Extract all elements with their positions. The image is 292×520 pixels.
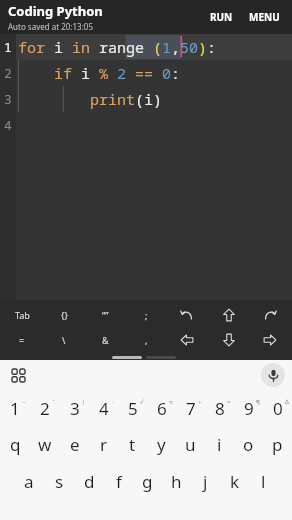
staticText: g [142, 470, 153, 493]
button[interactable]: k [220, 463, 249, 500]
button[interactable]: j [191, 463, 220, 500]
staticText: Tab [15, 309, 30, 321]
button[interactable]: RUN [204, 6, 239, 28]
staticText: 4 [4, 116, 12, 134]
button[interactable]: & [86, 328, 124, 351]
staticText: {} [61, 309, 68, 321]
staticText: y [157, 433, 166, 456]
staticText: ∆ [285, 398, 290, 405]
button[interactable]: 7 [176, 390, 205, 426]
button[interactable]: {} [45, 303, 83, 326]
staticText: l [261, 470, 266, 493]
button[interactable]: down [210, 328, 248, 351]
staticText: for i in range (1,50): [18, 37, 217, 57]
button[interactable]: undo [168, 303, 206, 326]
staticText: h [171, 470, 182, 493]
staticText: ` [53, 398, 55, 406]
staticText: MENU [249, 10, 280, 24]
button[interactable]: p [263, 426, 292, 463]
button[interactable]: i [205, 426, 234, 463]
button[interactable]: MENU [243, 6, 286, 28]
button[interactable]: 0 [263, 390, 292, 426]
staticText: ¶ [256, 398, 260, 406]
staticText: √ [140, 398, 144, 405]
staticText: 5 [128, 397, 138, 420]
staticText: 3 [70, 397, 80, 420]
staticText: · [112, 398, 114, 406]
staticText: ÷ [198, 398, 202, 406]
staticText: Auto saved at 20:13:05 [8, 21, 93, 32]
button[interactable]: 3 [60, 390, 89, 426]
button[interactable]: = [3, 328, 41, 351]
staticText: 1 [10, 397, 20, 420]
staticText: o [243, 433, 254, 456]
staticText: print(i) [18, 89, 163, 109]
button[interactable]: 4 [89, 390, 118, 426]
staticText: 0 [273, 397, 283, 420]
staticText: j [203, 470, 208, 493]
staticText: 8 [215, 397, 225, 420]
staticText: p [272, 433, 283, 456]
button[interactable]: 8 [205, 390, 234, 426]
button[interactable]: r [89, 426, 118, 463]
staticText: w [38, 433, 52, 456]
staticText: a [24, 470, 34, 493]
staticText: ~ [22, 398, 26, 406]
button[interactable]: left [168, 328, 206, 351]
staticText: d [84, 470, 95, 493]
staticText: 1 [4, 38, 12, 56]
button[interactable]: y [147, 426, 176, 463]
button[interactable]: , [127, 328, 165, 351]
button[interactable]: up [210, 303, 248, 326]
button[interactable]: d [74, 463, 104, 500]
staticText: i [217, 433, 222, 456]
staticText: , [145, 334, 148, 346]
button[interactable]: s [44, 463, 74, 500]
button[interactable]: redo [251, 303, 289, 326]
staticText: t [129, 433, 136, 456]
button[interactable]: o [234, 426, 263, 463]
staticText: r [100, 433, 108, 456]
staticText: 4 [99, 397, 109, 420]
button[interactable]: Voice input [261, 363, 285, 387]
button[interactable]: ; [127, 303, 165, 326]
staticText: π [169, 398, 173, 406]
button[interactable]: t [118, 426, 147, 463]
staticText: ; [145, 309, 148, 321]
button[interactable]: 2 [30, 390, 60, 426]
button[interactable]: w [30, 426, 60, 463]
button[interactable]: 5 [118, 390, 147, 426]
staticText: 9 [244, 397, 254, 420]
staticText: u [185, 433, 196, 456]
button[interactable]: right [251, 328, 289, 351]
button[interactable]: “” [86, 303, 124, 326]
button[interactable]: l [249, 463, 278, 500]
staticText: 2 [4, 64, 12, 82]
staticText: 7 [186, 397, 196, 420]
button[interactable]: 9 [234, 390, 263, 426]
button[interactable]: Toolbox [7, 364, 29, 386]
staticText: 2 [40, 397, 50, 420]
button[interactable]: a [14, 463, 44, 500]
button[interactable]: e [60, 426, 89, 463]
staticText: if i % 2 == 0: [18, 63, 181, 83]
staticText: Coding Python [8, 2, 103, 20]
staticText: s [55, 470, 64, 493]
button[interactable]: \ [45, 328, 83, 351]
staticText: f [116, 470, 122, 493]
staticText: & [102, 334, 109, 346]
button[interactable]: h [162, 463, 191, 500]
button[interactable]: q [0, 426, 30, 463]
button[interactable]: 1 [0, 390, 30, 426]
button[interactable]: Tab [3, 303, 41, 326]
button[interactable]: u [176, 426, 205, 463]
staticText: RUN [210, 10, 233, 24]
staticText: | [82, 398, 86, 406]
button[interactable]: f [104, 463, 133, 500]
staticText: 3 [4, 90, 12, 108]
staticText: = [19, 334, 25, 346]
staticText: e [70, 433, 80, 456]
staticText: × [227, 398, 231, 406]
button[interactable]: g [133, 463, 162, 500]
button[interactable]: 6 [147, 390, 176, 426]
